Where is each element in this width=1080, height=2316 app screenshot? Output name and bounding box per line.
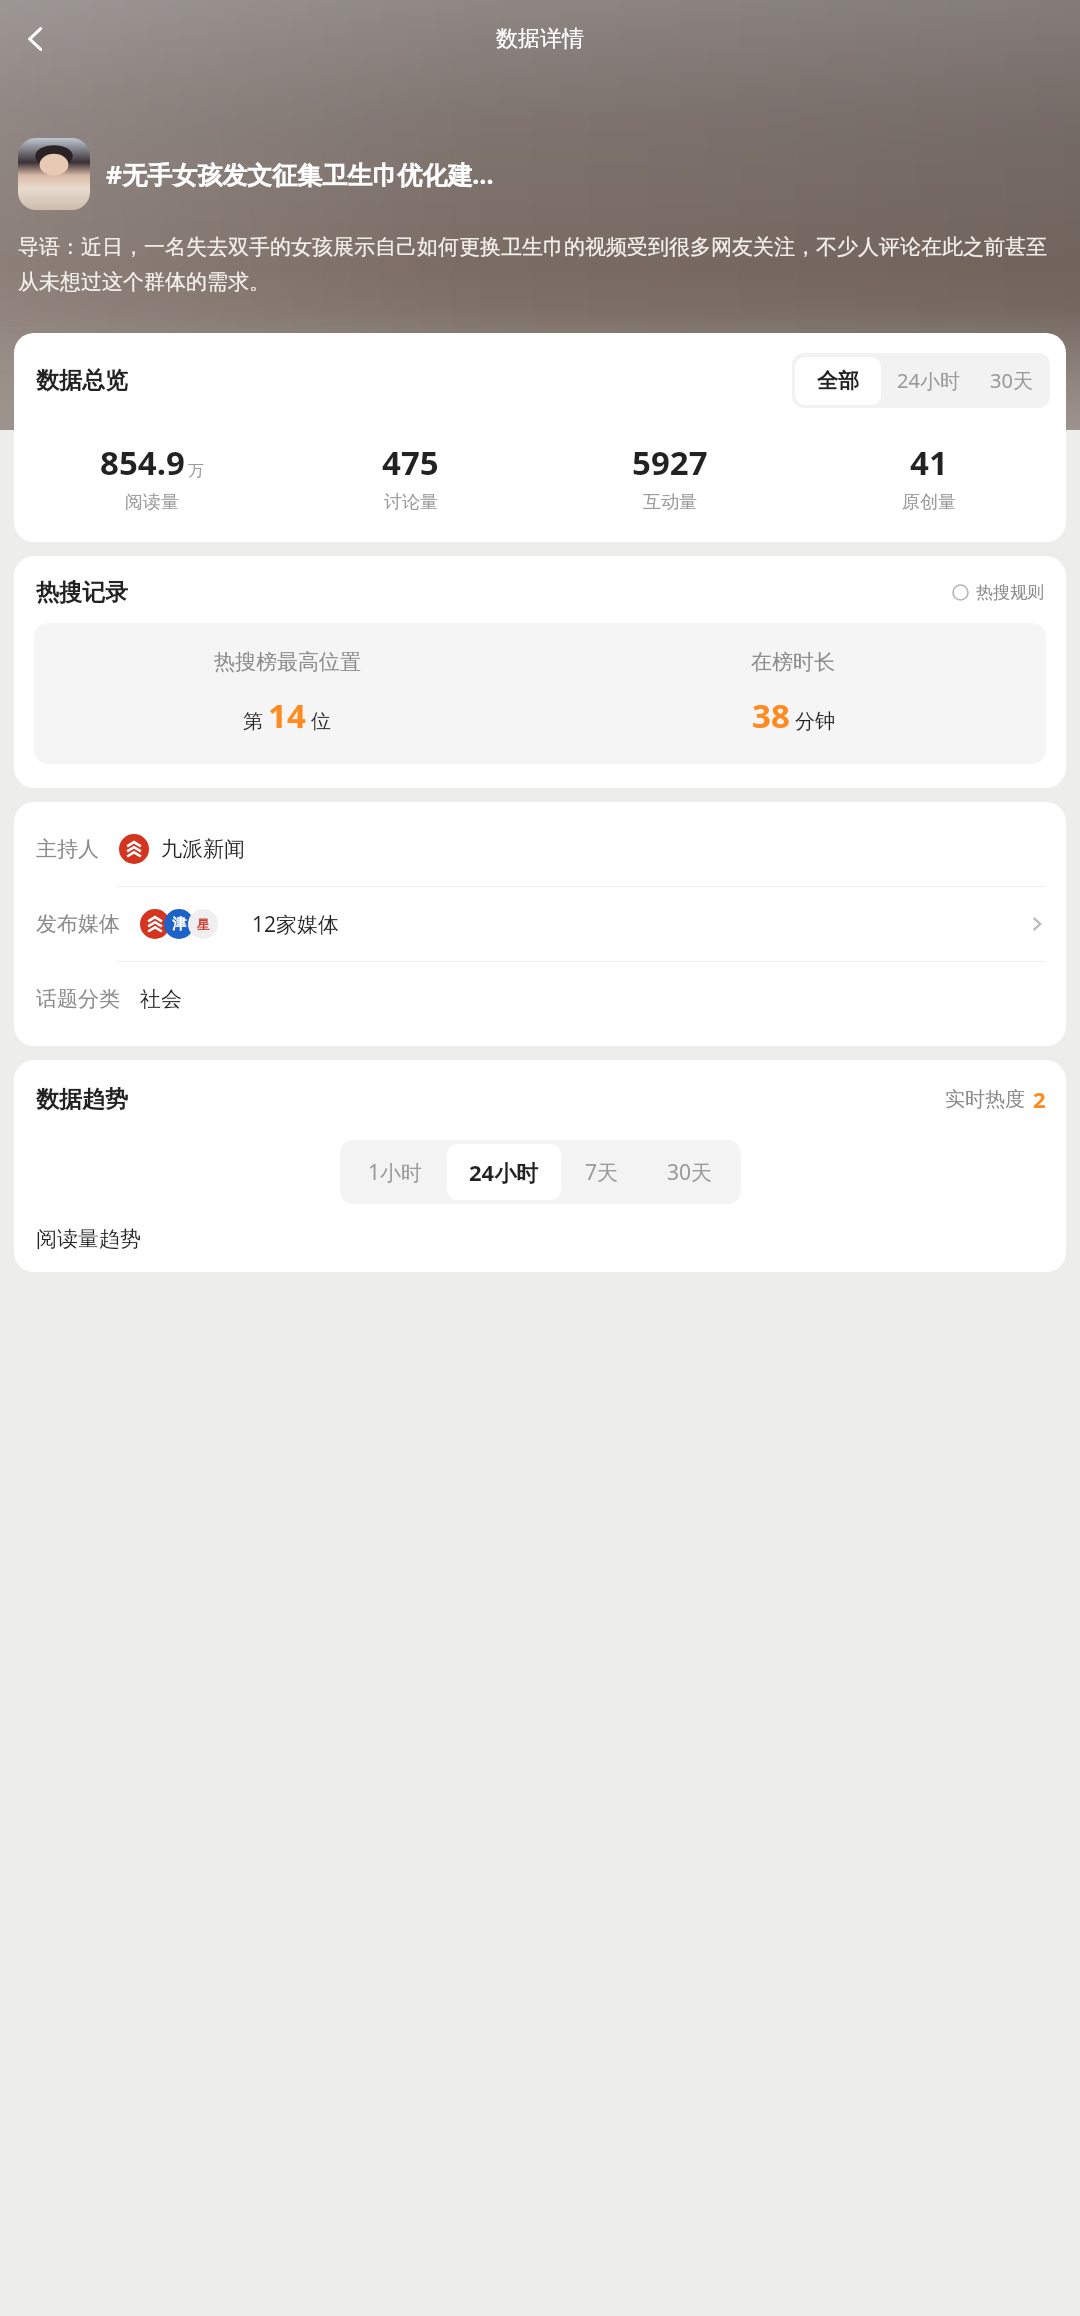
staticText: 数据趋势 bbox=[36, 1085, 128, 1114]
staticText: 7天 bbox=[585, 1158, 619, 1187]
button[interactable]: 主持人 bbox=[14, 812, 1066, 887]
staticText: 854.9 bbox=[100, 440, 185, 485]
staticText: 第 bbox=[243, 709, 263, 734]
button[interactable]: 475 bbox=[281, 440, 540, 514]
button[interactable]: 话题分类 bbox=[14, 962, 1066, 1036]
staticText: 2 bbox=[1033, 1084, 1046, 1114]
staticText: 24小时 bbox=[897, 367, 960, 394]
staticText: 原创量 bbox=[902, 491, 956, 514]
staticText: 阅读量 bbox=[125, 491, 179, 514]
staticText: 1小时 bbox=[368, 1158, 423, 1187]
staticText: 41 bbox=[910, 440, 948, 485]
button[interactable]: 1小时 bbox=[344, 1145, 447, 1200]
button[interactable]: 全部 bbox=[795, 357, 881, 405]
staticText: 全部 bbox=[817, 368, 859, 394]
staticText: 导语：近日，一名失去双手的女孩展示自己如何更换卫生巾的视频受到很多网友关注，不少… bbox=[18, 234, 1062, 295]
staticText: 阅读量趋势 bbox=[36, 1226, 141, 1252]
staticText: 475 bbox=[382, 440, 439, 485]
staticText: 主持人 bbox=[36, 836, 99, 862]
staticText: 14 bbox=[268, 693, 306, 738]
button[interactable]: Back bbox=[8, 11, 64, 67]
staticText: 社会 bbox=[140, 986, 182, 1012]
staticText: 九派新闻 bbox=[161, 836, 245, 862]
button[interactable]: 854.9 bbox=[22, 440, 281, 514]
staticText: 热搜榜最高位置 bbox=[214, 649, 361, 675]
staticText: 津 bbox=[172, 915, 186, 933]
button[interactable]: 热搜榜最高位置 bbox=[34, 649, 540, 738]
staticText: 讨论量 bbox=[384, 491, 438, 514]
button[interactable]: 7天 bbox=[561, 1145, 643, 1200]
staticText: 星 bbox=[197, 916, 210, 932]
staticText: 30天 bbox=[667, 1158, 713, 1187]
staticText: 数据详情 bbox=[496, 25, 584, 53]
staticText: 24小时 bbox=[469, 1157, 539, 1187]
staticText: 实时热度 bbox=[945, 1087, 1025, 1112]
staticText: 12家媒体 bbox=[252, 910, 340, 939]
button[interactable]: 30天 bbox=[643, 1145, 737, 1200]
staticText: #无手女孩发文征集卫生巾优化建… bbox=[106, 157, 1066, 191]
staticText: 数据总览 bbox=[36, 366, 128, 395]
staticText: 万 bbox=[188, 461, 204, 481]
staticText: 热搜记录 bbox=[36, 578, 128, 607]
staticText: 38 bbox=[752, 693, 790, 738]
staticText: 位 bbox=[311, 709, 331, 734]
staticText: 热搜规则 bbox=[976, 582, 1044, 603]
staticText: 在榜时长 bbox=[751, 649, 835, 675]
button[interactable]: 热搜规则 bbox=[948, 578, 1048, 607]
staticText: 话题分类 bbox=[36, 986, 120, 1012]
button[interactable]: 5927 bbox=[540, 440, 799, 514]
button[interactable]: Avatar bbox=[18, 138, 90, 210]
button[interactable]: 30天 bbox=[976, 356, 1047, 405]
staticText: 互动量 bbox=[643, 491, 697, 514]
button[interactable]: 在榜时长 bbox=[540, 649, 1046, 738]
button[interactable]: 41 bbox=[799, 440, 1058, 514]
staticText: 30天 bbox=[990, 367, 1033, 394]
button[interactable]: 24小时 bbox=[447, 1144, 561, 1200]
button[interactable]: 24小时 bbox=[881, 356, 976, 405]
staticText: 发布媒体 bbox=[36, 911, 120, 937]
staticText: 分钟 bbox=[795, 709, 835, 734]
button[interactable]: 发布媒体 bbox=[14, 887, 1066, 962]
staticText: 5927 bbox=[632, 440, 708, 485]
